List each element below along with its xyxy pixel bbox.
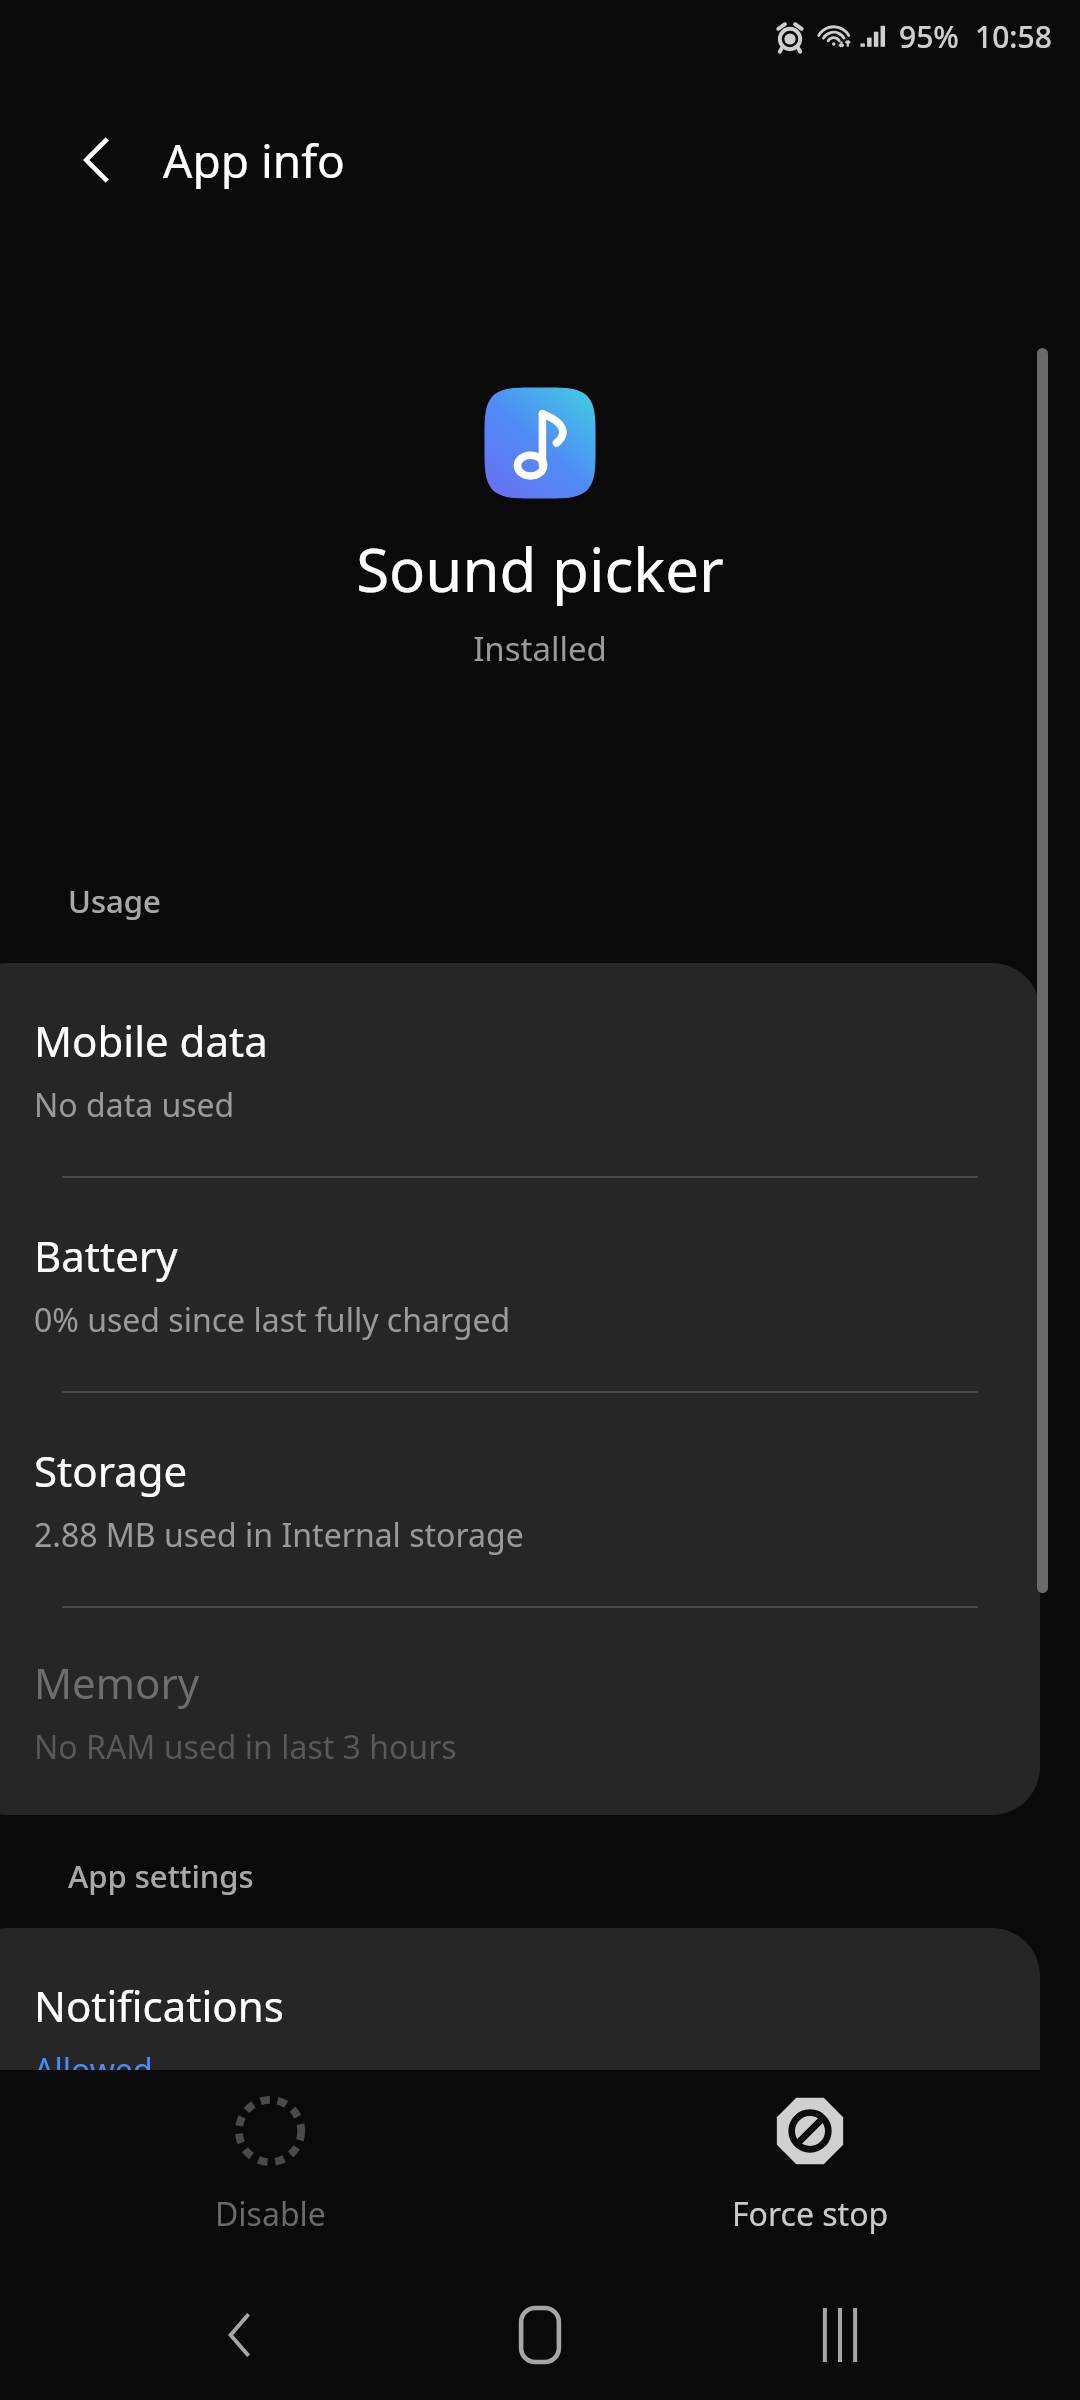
staticText: Memory <box>34 1654 200 1711</box>
staticText: Usage <box>68 880 161 922</box>
staticText: Installed <box>473 626 607 671</box>
button[interactable]: Home <box>480 2275 600 2395</box>
staticText: Sound picker <box>356 528 724 610</box>
staticText: No data used <box>34 1083 235 1127</box>
staticText: Storage <box>34 1442 188 1499</box>
button[interactable]: Recent apps <box>780 2275 900 2395</box>
button[interactable]: Memory <box>0 1608 1040 1815</box>
staticText: App settings <box>68 1855 254 1897</box>
button[interactable]: Disable <box>0 2070 540 2270</box>
button[interactable]: Back <box>180 2275 300 2395</box>
staticText: Disable <box>215 2192 326 2236</box>
staticText: Battery <box>34 1227 178 1284</box>
button[interactable]: Mobile data <box>0 963 1040 1176</box>
staticText: App info <box>163 129 345 192</box>
staticText: 0% used since last fully charged <box>34 1298 511 1342</box>
staticText: Mobile data <box>34 1012 268 1069</box>
button[interactable]: Battery <box>0 1178 1040 1391</box>
button[interactable]: Back <box>45 108 149 212</box>
button[interactable]: Storage <box>0 1393 1040 1606</box>
staticText: Force stop <box>732 2192 889 2236</box>
staticText: 10:58 <box>975 16 1052 57</box>
staticText: 95% <box>899 16 959 57</box>
staticText: Notifications <box>34 1977 284 2034</box>
button[interactable]: Notifications <box>0 1928 1040 2141</box>
staticText: 2.88 MB used in Internal storage <box>34 1513 524 1557</box>
staticText: No RAM used in last 3 hours <box>34 1725 457 1769</box>
button[interactable]: Force stop <box>540 2070 1080 2270</box>
staticText: Allowed <box>34 2048 153 2092</box>
